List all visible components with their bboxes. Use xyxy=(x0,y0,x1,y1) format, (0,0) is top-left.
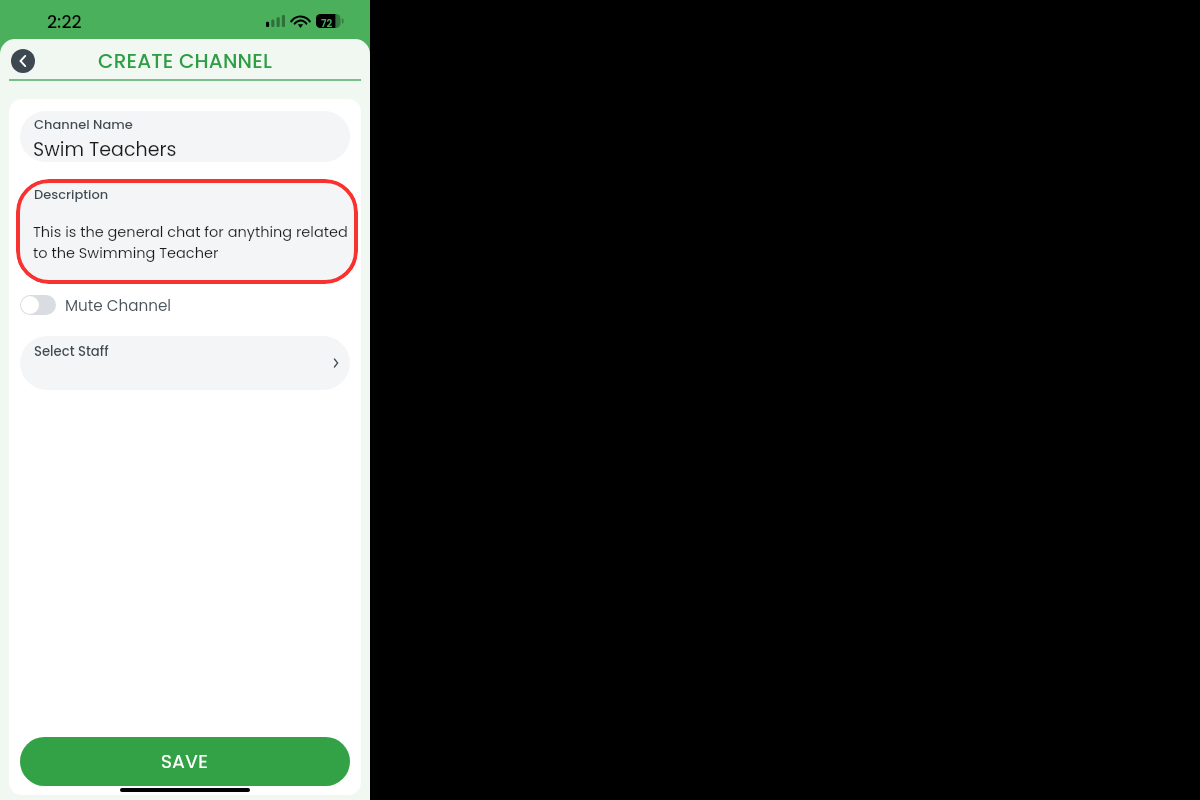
button[interactable]: Mute Channel toggle, off xyxy=(20,292,172,318)
staticText: SAVE xyxy=(161,749,209,775)
staticText: Swim Teachers xyxy=(33,136,177,162)
button[interactable]: Back xyxy=(11,49,35,73)
button[interactable]: SAVE xyxy=(20,737,350,786)
staticText: 2:22 xyxy=(47,10,82,35)
staticText: Channel Name xyxy=(34,115,133,133)
button[interactable]: Select Staff xyxy=(20,336,350,390)
staticText: CREATE CHANNEL xyxy=(98,47,272,75)
staticText: This is the general chat for anything re… xyxy=(33,222,348,263)
button[interactable]: Description xyxy=(16,179,358,284)
staticText: Mute Channel xyxy=(65,295,172,316)
staticText: 72 xyxy=(321,16,333,30)
staticText: Description xyxy=(34,185,109,203)
button[interactable]: Channel Name xyxy=(20,111,350,162)
staticText: Select Staff xyxy=(34,342,109,360)
